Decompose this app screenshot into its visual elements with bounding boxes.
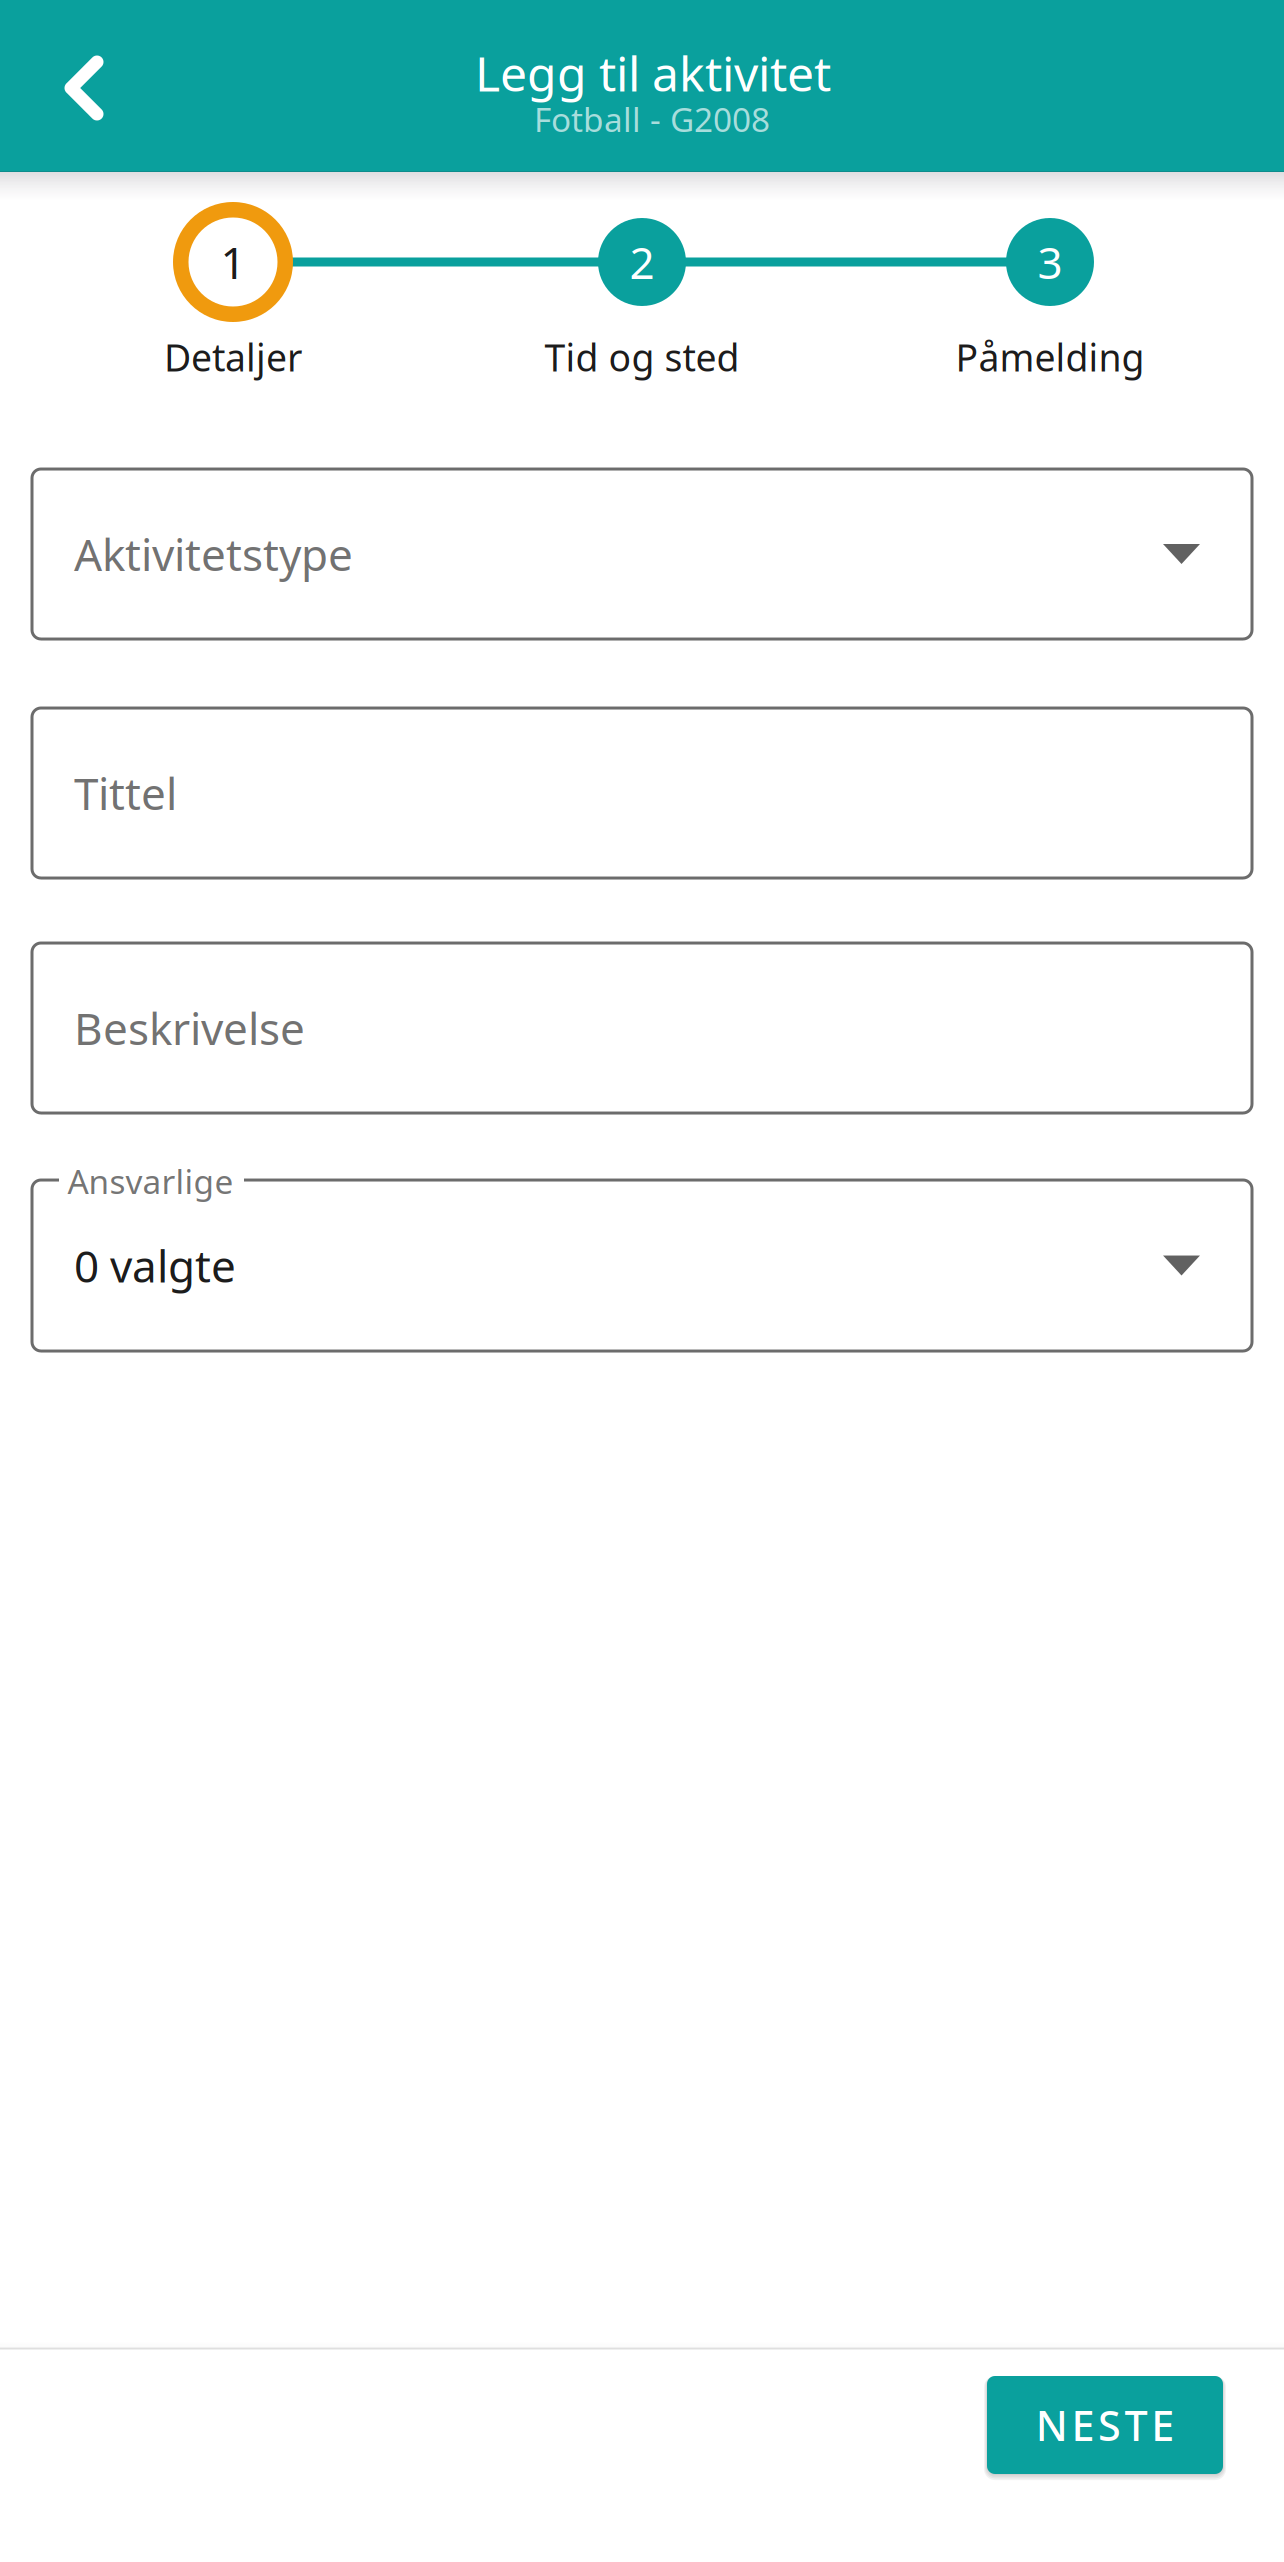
staticText: NESTE: [1036, 2398, 1174, 2452]
button[interactable]: Ansvarlige: [32, 1180, 1252, 1351]
staticText: 0 valgte: [74, 1236, 236, 1295]
button[interactable]: Aktivitetstype: [32, 469, 1252, 639]
button[interactable]: Tittel: [32, 708, 1252, 878]
button[interactable]: 2: [492, 202, 792, 362]
staticText: Tid og sted: [544, 332, 739, 382]
button[interactable]: 3: [900, 202, 1200, 362]
button[interactable]: 1: [83, 202, 383, 362]
staticText: Legg til aktivitet: [475, 41, 831, 105]
staticText: Detaljer: [164, 332, 302, 382]
staticText: Tittel: [74, 764, 177, 822]
staticText: Ansvarlige: [67, 1159, 233, 1203]
button[interactable]: Beskrivelse: [32, 943, 1252, 1113]
button[interactable]: NESTE: [987, 2376, 1223, 2474]
staticText: Aktivitetstype: [74, 525, 353, 583]
staticText: Påmelding: [955, 332, 1144, 382]
staticText: Fotball - G2008: [534, 97, 770, 141]
button[interactable]: Tilbake: [19, 23, 149, 153]
staticText: 1: [220, 233, 245, 291]
staticText: 3: [1037, 233, 1062, 291]
staticText: Beskrivelse: [74, 999, 305, 1057]
staticText: 2: [629, 233, 654, 291]
